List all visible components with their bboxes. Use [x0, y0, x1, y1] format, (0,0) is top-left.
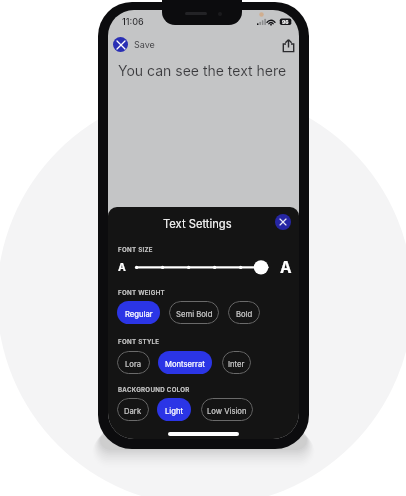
- staticText: FONT STYLE: [118, 338, 160, 346]
- staticText: Inter: [228, 360, 245, 369]
- staticText: 96: [282, 19, 289, 25]
- button[interactable]: Save: [113, 37, 155, 52]
- staticText: Semi Bold: [176, 310, 213, 319]
- staticText: Dark: [124, 407, 142, 416]
- button[interactable]: Share: [278, 35, 299, 56]
- button[interactable]: Light: [157, 398, 191, 421]
- button[interactable]: Lora: [117, 351, 150, 374]
- staticText: Bold: [236, 310, 253, 319]
- staticText: FONT WEIGHT: [118, 289, 165, 297]
- button[interactable]: Inter: [222, 351, 251, 374]
- staticText: Lora: [125, 360, 142, 369]
- button[interactable]: Close: [275, 214, 291, 230]
- button[interactable]: Bold: [228, 301, 260, 324]
- staticText: Text Settings: [163, 217, 232, 231]
- staticText: A: [118, 261, 126, 274]
- staticText: Light: [165, 407, 183, 416]
- button[interactable]: Dark: [117, 398, 149, 421]
- button[interactable]: Semi Bold: [169, 301, 219, 324]
- staticText: Montserrat: [165, 360, 205, 369]
- staticText: FONT SIZE: [118, 246, 153, 254]
- staticText: A: [280, 258, 292, 277]
- button[interactable]: Montserrat: [158, 351, 212, 374]
- staticText: Save: [134, 39, 155, 50]
- button[interactable]: Regular: [117, 301, 160, 324]
- staticText: You can see the text here: [118, 62, 287, 79]
- staticText: BACKGROUND COLOR: [118, 386, 190, 394]
- staticText: Low Vision: [207, 407, 247, 416]
- button[interactable]: Low Vision: [201, 398, 253, 421]
- staticText: 11:06: [122, 16, 144, 27]
- staticText: Regular: [125, 310, 153, 319]
